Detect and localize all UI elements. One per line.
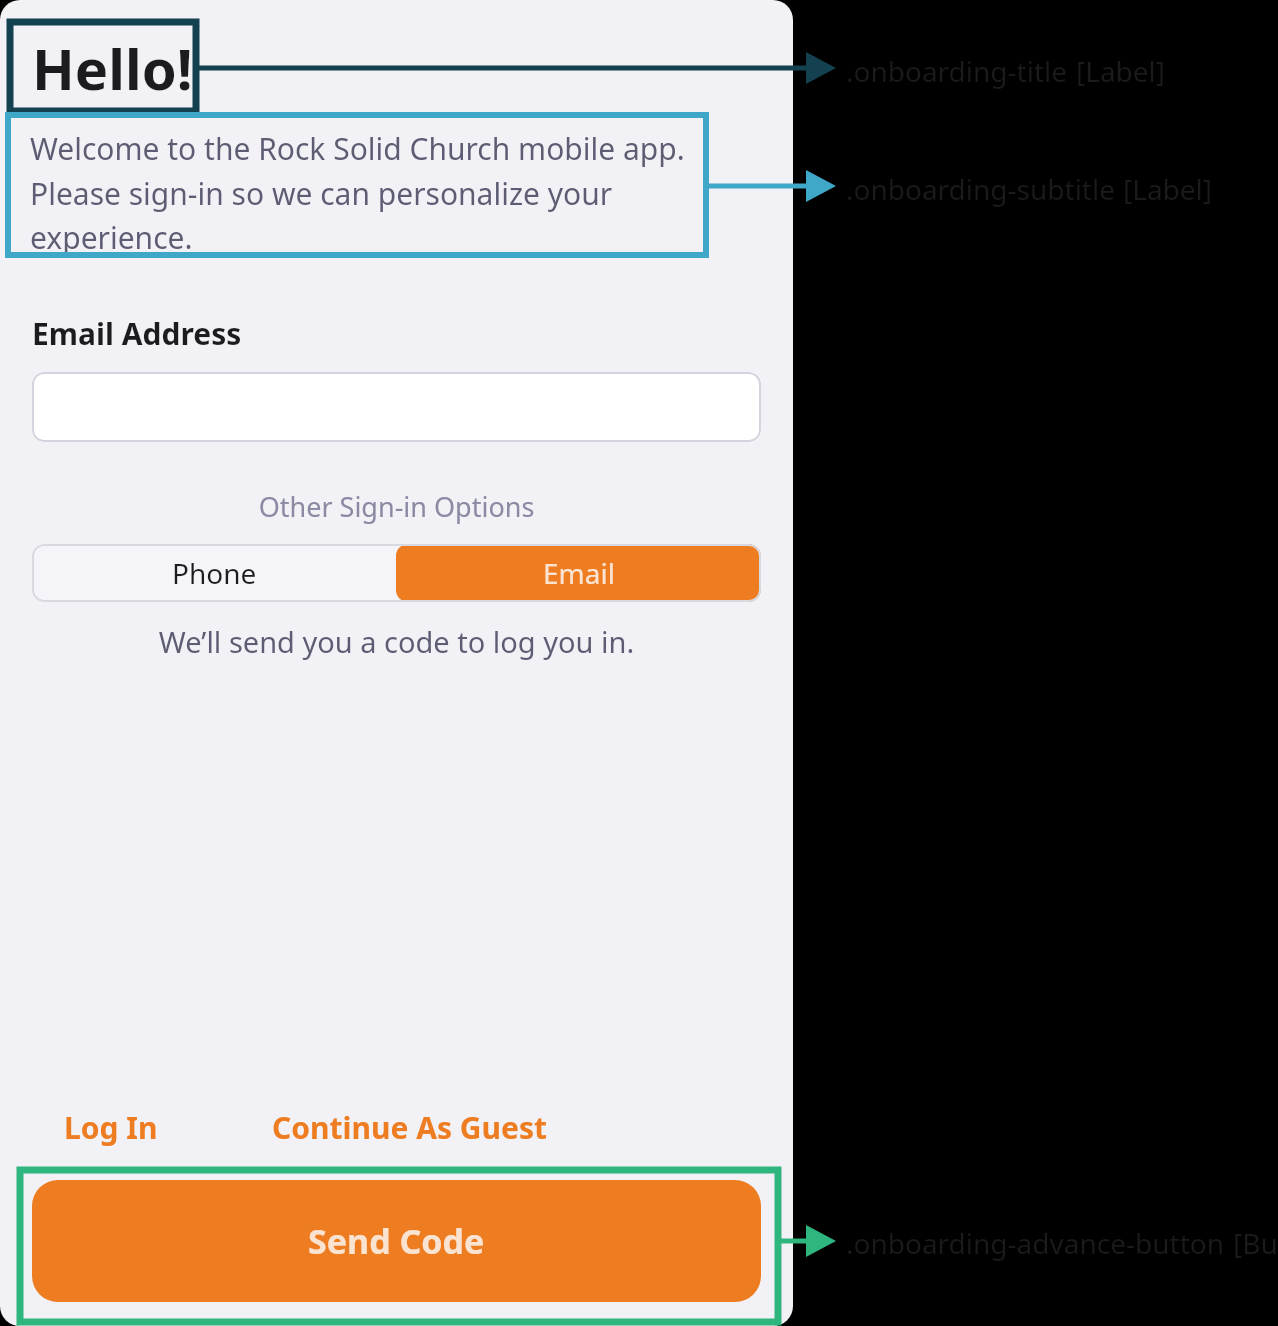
- button[interactable]: Phone: [32, 544, 396, 602]
- staticText: .onboarding-advance-button: [846, 1224, 1225, 1262]
- staticText: .onboarding-title: [846, 52, 1068, 90]
- staticText: Log In: [64, 1107, 158, 1148]
- staticText: Continue As Guest: [272, 1107, 548, 1148]
- staticText: Welcome to the Rock Solid Church mobile …: [30, 128, 701, 257]
- staticText: [Button]: [1233, 1224, 1278, 1262]
- staticText: Send Code: [308, 1218, 485, 1264]
- staticText: Hello!: [32, 30, 193, 106]
- button[interactable]: Email: [396, 544, 761, 602]
- staticText: We’ll send you a code to log you in.: [0, 622, 793, 661]
- button[interactable]: Log In: [60, 1101, 162, 1154]
- button[interactable]: [32, 372, 761, 442]
- staticText: [Label]: [1076, 52, 1166, 90]
- staticText: Email Address: [32, 313, 242, 354]
- staticText: [Label]: [1123, 170, 1213, 208]
- button[interactable]: Continue As Guest: [268, 1101, 552, 1154]
- staticText: Email: [543, 554, 615, 592]
- staticText: Phone: [172, 554, 257, 592]
- button[interactable]: Send Code: [32, 1180, 761, 1302]
- staticText: Other Sign-in Options: [0, 488, 793, 525]
- staticText: .onboarding-subtitle: [846, 170, 1115, 208]
